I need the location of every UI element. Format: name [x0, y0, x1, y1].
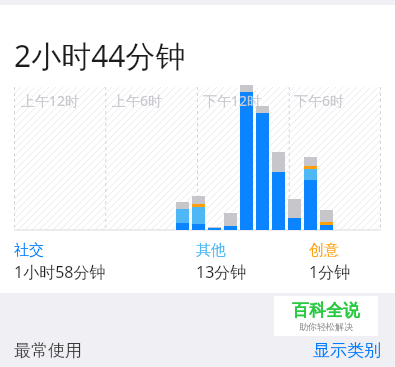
button[interactable]: 显示类别 [313, 334, 395, 367]
staticText: 下午12时 [203, 91, 262, 110]
button[interactable]: 创意 [309, 241, 351, 283]
staticText: 百科全说 [292, 300, 360, 321]
staticText: 创意 [309, 241, 339, 260]
staticText: 上午6时 [112, 91, 163, 110]
staticText: 上午12时 [21, 91, 80, 110]
staticText: 2小时44分钟 [14, 35, 186, 76]
button[interactable]: 最常使用 [0, 334, 313, 367]
staticText: 最常使用 [14, 340, 82, 361]
staticText: 显示类别 [313, 340, 381, 361]
staticText: 助你轻松解决 [299, 321, 353, 332]
button[interactable]: 社交 [14, 241, 106, 283]
staticText: 13分钟 [196, 261, 247, 283]
staticText: 下午6时 [294, 91, 345, 110]
button[interactable]: 其他 [196, 241, 247, 283]
staticText: 社交 [14, 241, 44, 260]
staticText: 其他 [196, 241, 226, 260]
staticText: 1小时58分钟 [14, 261, 106, 283]
staticText: 1分钟 [309, 261, 351, 283]
button[interactable]: 百科全说 [274, 296, 378, 336]
